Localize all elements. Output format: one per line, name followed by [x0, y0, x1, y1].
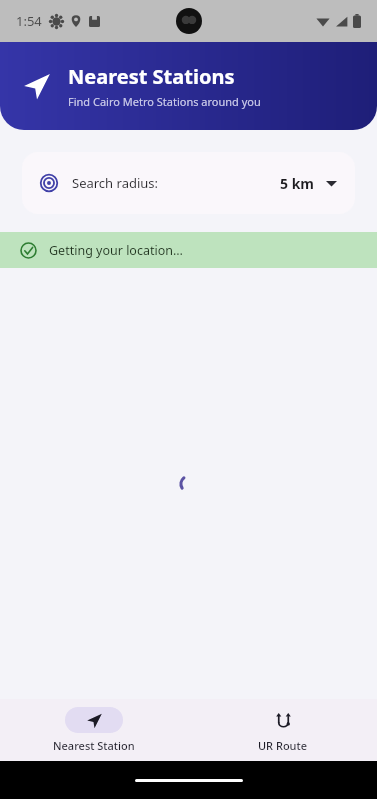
staticText: UR Route — [258, 738, 308, 753]
staticText: Getting your location… — [49, 242, 183, 259]
button[interactable]: Search radius: — [22, 152, 355, 214]
button[interactable]: Nearest Station — [0, 699, 188, 761]
staticText: Nearest Stations — [68, 63, 235, 90]
staticText: 5 km — [280, 174, 314, 193]
staticText: Find Cairo Metro Stations around you — [68, 94, 261, 109]
staticText: Nearest Station — [53, 738, 135, 753]
other: Change search radius — [326, 178, 337, 189]
button[interactable]: UR Route — [188, 699, 377, 761]
staticText: 1:54 — [16, 12, 42, 30]
staticText: Search radius: — [72, 174, 159, 192]
